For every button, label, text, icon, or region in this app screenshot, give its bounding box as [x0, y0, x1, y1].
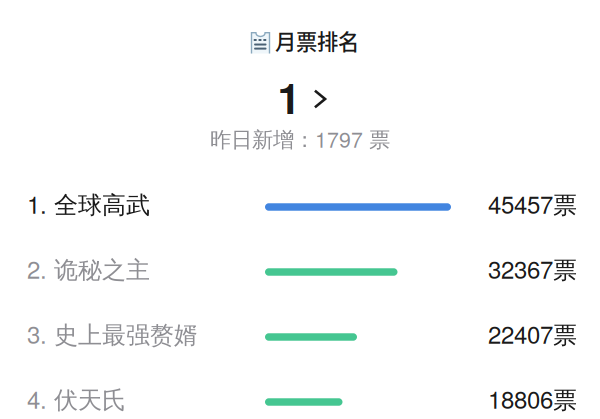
- staticText: 4. 伏天氏: [27, 381, 126, 416]
- staticText: 32367票: [488, 251, 577, 286]
- staticText: 1. 全球高武: [27, 186, 150, 221]
- staticText: 18806票: [488, 381, 577, 416]
- button[interactable]: 2. 诡秘之主: [0, 236, 600, 300]
- staticText: 昨日新增：1797 票: [210, 123, 390, 154]
- button[interactable]: 1. 全球高武: [0, 171, 600, 235]
- button[interactable]: 3. 史上最强赘婿: [0, 301, 600, 365]
- staticText: 月票排名: [275, 25, 359, 56]
- staticText: 22407票: [488, 316, 577, 351]
- staticText: 3. 史上最强赘婿: [27, 316, 198, 351]
- button[interactable]: 4. 伏天氏: [0, 366, 600, 419]
- staticText: 45457票: [488, 186, 577, 221]
- staticText: 2. 诡秘之主: [27, 251, 150, 286]
- staticText: 1: [277, 67, 300, 127]
- button[interactable]: 1: [2, 79, 600, 115]
